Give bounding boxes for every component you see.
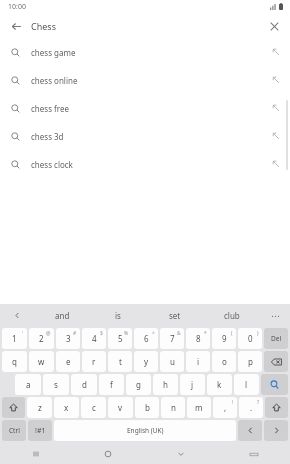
- button[interactable]: t: [108, 351, 132, 372]
- button[interactable]: 1: [2, 328, 27, 349]
- staticText: b: [145, 402, 150, 413]
- button[interactable]: x: [54, 397, 79, 418]
- button[interactable]: chess 3d: [0, 122, 290, 150]
- button[interactable]: ,: [213, 397, 237, 418]
- staticText: n: [171, 402, 176, 413]
- button[interactable]: 2: [29, 328, 54, 349]
- button[interactable]: Insert chess online: [262, 66, 290, 94]
- button[interactable]: h: [153, 374, 178, 395]
- button[interactable]: e: [56, 351, 80, 372]
- button[interactable]: u: [160, 351, 184, 372]
- button[interactable]: m: [187, 397, 211, 418]
- button[interactable]: i: [186, 351, 210, 372]
- button[interactable]: Del: [264, 328, 288, 349]
- button[interactable]: 5: [108, 328, 132, 349]
- button[interactable]: n: [161, 397, 185, 418]
- staticText: 6: [144, 333, 149, 344]
- staticText: f: [110, 379, 113, 390]
- button[interactable]: Search: [261, 374, 288, 395]
- staticText: i: [197, 356, 200, 367]
- button[interactable]: Insert chess game: [262, 38, 290, 66]
- button[interactable]: Clear search: [262, 14, 286, 38]
- button[interactable]: Home: [72, 444, 144, 464]
- button[interactable]: 9: [212, 328, 236, 349]
- button[interactable]: .: [239, 397, 263, 418]
- staticText: u: [170, 356, 175, 367]
- button[interactable]: b: [135, 397, 159, 418]
- staticText: 5: [118, 333, 123, 344]
- button[interactable]: Insert chess 3d: [262, 122, 290, 150]
- button[interactable]: chess game: [0, 38, 290, 66]
- button[interactable]: g: [126, 374, 151, 395]
- button[interactable]: c: [81, 397, 106, 418]
- button[interactable]: v: [108, 397, 133, 418]
- button[interactable]: English (UK): [54, 420, 236, 441]
- button[interactable]: Insert chess free: [262, 94, 290, 122]
- button[interactable]: and: [34, 304, 90, 327]
- button[interactable]: Shift: [2, 397, 25, 418]
- staticText: 7: [170, 333, 175, 344]
- staticText: r: [92, 356, 96, 367]
- button[interactable]: p: [238, 351, 262, 372]
- button[interactable]: 6: [134, 328, 158, 349]
- staticText: (: [231, 330, 233, 337]
- button[interactable]: 8: [186, 328, 210, 349]
- button[interactable]: Ctrl: [2, 420, 26, 441]
- button[interactable]: Shift: [265, 397, 288, 418]
- button[interactable]: chess free: [0, 94, 290, 122]
- button[interactable]: Hide keyboard: [144, 444, 217, 464]
- button[interactable]: 4: [82, 328, 106, 349]
- button[interactable]: d: [71, 374, 97, 395]
- staticText: m: [195, 402, 203, 413]
- button[interactable]: r: [82, 351, 106, 372]
- staticText: ?: [257, 399, 260, 406]
- staticText: ^: [152, 330, 155, 337]
- button[interactable]: Back: [4, 14, 28, 38]
- button[interactable]: Move cursor left: [238, 420, 262, 441]
- button[interactable]: Previous suggestions: [0, 304, 34, 327]
- button[interactable]: o: [212, 351, 236, 372]
- staticText: y: [144, 356, 149, 367]
- button[interactable]: l: [234, 374, 259, 395]
- staticText: *: [204, 330, 207, 337]
- staticText: Chess: [31, 20, 56, 32]
- button[interactable]: is: [90, 304, 146, 327]
- button[interactable]: More options: [260, 304, 290, 327]
- staticText: 10:00: [8, 2, 26, 12]
- button[interactable]: Backspace: [264, 351, 288, 372]
- button[interactable]: club: [203, 304, 260, 327]
- button[interactable]: chess clock: [0, 150, 290, 178]
- button[interactable]: Keyboard settings: [217, 444, 290, 464]
- button[interactable]: q: [2, 351, 27, 372]
- button[interactable]: Move cursor right: [264, 420, 288, 441]
- button[interactable]: 3: [56, 328, 80, 349]
- staticText: &: [177, 330, 181, 337]
- button[interactable]: k: [207, 374, 232, 395]
- button[interactable]: j: [180, 374, 205, 395]
- button[interactable]: 0: [238, 328, 262, 349]
- button[interactable]: f: [99, 374, 124, 395]
- staticText: z: [38, 402, 42, 413]
- button[interactable]: y: [134, 351, 158, 372]
- staticText: and: [55, 310, 70, 321]
- staticText: l: [245, 379, 248, 390]
- button[interactable]: Recent apps: [0, 444, 72, 464]
- button[interactable]: 7: [160, 328, 184, 349]
- staticText: c: [92, 402, 96, 413]
- staticText: !: [232, 399, 234, 406]
- staticText: @: [46, 330, 51, 337]
- button[interactable]: s: [43, 374, 69, 395]
- staticText: %: [124, 330, 129, 337]
- button[interactable]: !#1: [28, 420, 52, 441]
- staticText: club: [224, 310, 240, 321]
- button[interactable]: z: [27, 397, 52, 418]
- button[interactable]: a: [15, 374, 41, 395]
- staticText: 8: [196, 333, 201, 344]
- button[interactable]: chess online: [0, 66, 290, 94]
- button[interactable]: set: [146, 304, 203, 327]
- staticText: j: [191, 379, 194, 390]
- button[interactable]: w: [29, 351, 54, 372]
- staticText: p: [248, 356, 253, 367]
- staticText: ': [22, 330, 24, 337]
- button[interactable]: Insert chess clock: [262, 150, 290, 178]
